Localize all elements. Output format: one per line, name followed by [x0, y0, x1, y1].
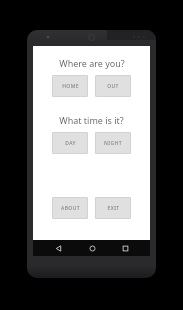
button[interactable]: Home — [84, 240, 100, 256]
staticText: OUT — [107, 83, 119, 90]
staticText: HOME — [62, 83, 79, 90]
button[interactable]: NIGHT — [95, 132, 131, 154]
button[interactable]: Recent apps — [117, 240, 133, 256]
button[interactable]: Back — [50, 240, 66, 256]
staticText: What time is it? — [59, 114, 124, 126]
staticText: ABOUT — [61, 205, 80, 212]
staticText: NIGHT — [104, 140, 122, 147]
button[interactable]: EXIT — [95, 197, 131, 219]
button[interactable]: ABOUT — [52, 197, 88, 219]
button[interactable]: DAY — [52, 132, 88, 154]
button[interactable]: OUT — [95, 75, 131, 97]
staticText: EXIT — [107, 205, 120, 212]
button[interactable]: HOME — [52, 75, 88, 97]
staticText: Where are you? — [59, 57, 125, 69]
staticText: DAY — [65, 140, 76, 147]
